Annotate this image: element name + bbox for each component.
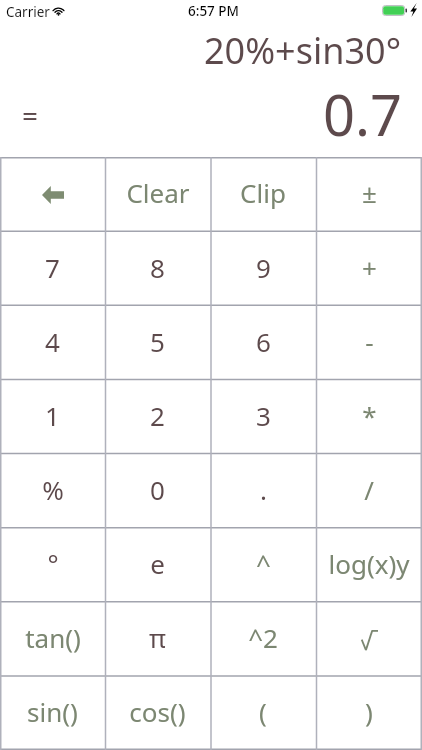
button[interactable]: π [105, 602, 210, 676]
staticText: log(x)y [328, 546, 410, 581]
staticText: Carrier [6, 3, 50, 21]
button[interactable]: - [316, 306, 422, 380]
staticText: + [362, 250, 377, 285]
button[interactable]: + [316, 232, 422, 306]
button[interactable]: ± [316, 157, 422, 232]
staticText: 2 [150, 398, 165, 433]
staticText: ° [47, 546, 59, 581]
button[interactable]: 9 [210, 232, 316, 306]
button[interactable]: Backspace [0, 157, 105, 232]
button[interactable]: 3 [210, 380, 316, 454]
button[interactable]: Clip [210, 157, 316, 232]
staticText: ± [362, 175, 377, 210]
button[interactable]: / [316, 454, 422, 528]
button[interactable]: ^ [210, 528, 316, 602]
staticText: 0 [150, 472, 165, 507]
staticText: cos() [129, 694, 186, 729]
staticText: 6 [256, 324, 271, 359]
staticText: - [365, 324, 374, 359]
button[interactable]: ° [0, 528, 105, 602]
button[interactable]: Clear [105, 157, 210, 232]
button[interactable]: ^2 [210, 602, 316, 676]
staticText: ^ [256, 546, 271, 581]
staticText: ( [259, 694, 267, 729]
staticText: . [260, 472, 267, 507]
staticText: Clear [126, 175, 190, 210]
button[interactable]: 6 [210, 306, 316, 380]
staticText: * [362, 398, 377, 433]
staticText: π [149, 620, 166, 655]
staticText: 0.7 [323, 76, 403, 152]
button[interactable]: 2 [105, 380, 210, 454]
staticText: Clip [240, 175, 286, 210]
button[interactable]: 7 [0, 232, 105, 306]
button[interactable]: log(x)y [316, 528, 422, 602]
button[interactable]: sin() [0, 676, 105, 750]
staticText: tan() [25, 620, 81, 655]
button[interactable]: ( [210, 676, 316, 750]
button[interactable]: ) [316, 676, 422, 750]
staticText: 7 [45, 250, 60, 285]
staticText: 9 [256, 250, 271, 285]
button[interactable]: Square root [316, 602, 422, 676]
staticText: 6:57 PM [188, 2, 239, 20]
button[interactable]: e [105, 528, 210, 602]
button[interactable]: 8 [105, 232, 210, 306]
button[interactable]: 1 [0, 380, 105, 454]
staticText: ) [365, 694, 373, 729]
staticText: 20%+sin30° [204, 26, 402, 74]
staticText: % [42, 472, 64, 507]
staticText: 5 [150, 324, 165, 359]
staticText: 4 [45, 324, 60, 359]
staticText: sin() [27, 694, 78, 729]
staticText: 8 [150, 250, 165, 285]
staticText: e [150, 546, 165, 581]
button[interactable]: % [0, 454, 105, 528]
button[interactable]: * [316, 380, 422, 454]
button[interactable]: cos() [105, 676, 210, 750]
staticText: = [22, 96, 39, 134]
button[interactable]: 5 [105, 306, 210, 380]
button[interactable]: tan() [0, 602, 105, 676]
staticText: 1 [45, 398, 60, 433]
button[interactable]: 0 [105, 454, 210, 528]
staticText: 3 [256, 398, 271, 433]
button[interactable]: 4 [0, 306, 105, 380]
staticText: / [364, 472, 374, 507]
button[interactable]: . [210, 454, 316, 528]
staticText: ^2 [248, 620, 278, 655]
